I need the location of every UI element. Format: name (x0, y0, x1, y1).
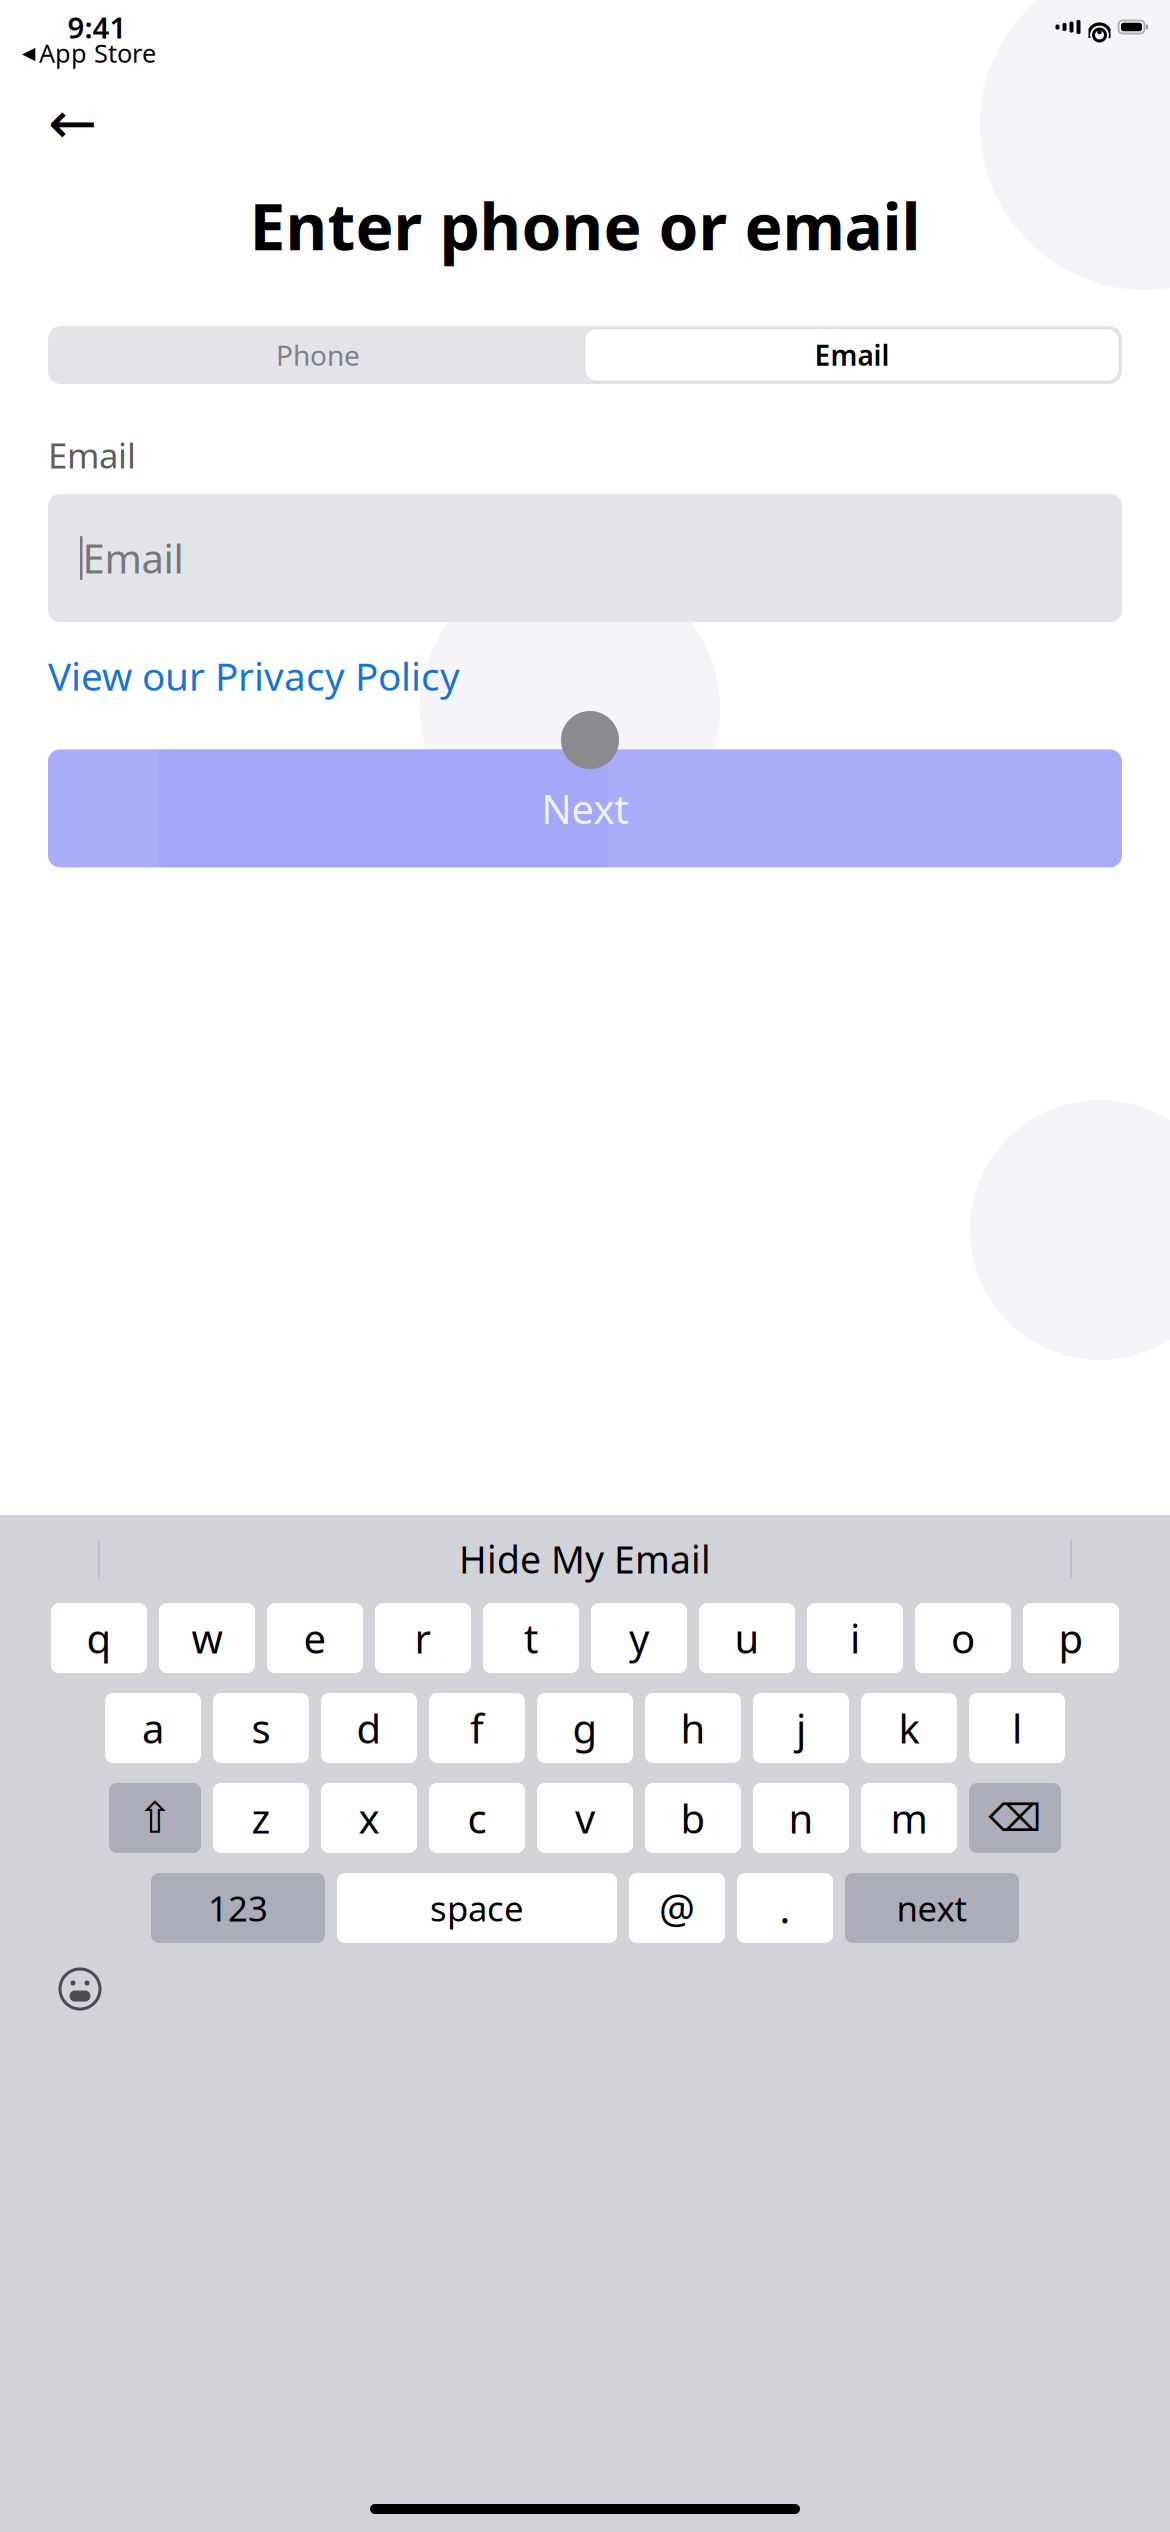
staticText: i (850, 1611, 860, 1664)
staticText: u (734, 1611, 759, 1664)
button[interactable]: q (51, 1603, 147, 1673)
staticText: . (779, 1881, 790, 1934)
staticText: s (251, 1701, 270, 1754)
staticText: ⇧ (137, 1794, 173, 1842)
staticText: n (788, 1791, 813, 1844)
button[interactable]: a (105, 1693, 201, 1763)
button[interactable]: k (861, 1693, 957, 1763)
button[interactable]: n (753, 1783, 849, 1853)
staticText: x (358, 1791, 379, 1844)
button[interactable]: g (537, 1693, 633, 1763)
staticText: 9:41 (67, 7, 126, 46)
button[interactable]: y (591, 1603, 687, 1673)
button[interactable]: x (321, 1783, 417, 1853)
button[interactable]: h (645, 1693, 741, 1763)
button[interactable]: z (213, 1783, 309, 1853)
staticText: o (951, 1611, 975, 1664)
button[interactable]: v (537, 1783, 633, 1853)
button[interactable]: Next (48, 749, 1122, 867)
button[interactable]: m (861, 1783, 957, 1853)
staticText: j (796, 1701, 806, 1754)
button[interactable]: s (213, 1693, 309, 1763)
button[interactable]: . (737, 1873, 833, 1943)
staticText: m (890, 1791, 927, 1844)
button[interactable]: Delete (969, 1783, 1061, 1853)
button[interactable]: b (645, 1783, 741, 1853)
staticText: Phone (276, 336, 360, 374)
staticText: p (1058, 1611, 1083, 1664)
staticText: e (303, 1611, 326, 1664)
staticText: ← (48, 90, 97, 156)
staticText: Email (814, 336, 889, 374)
staticText: ◀ (22, 43, 35, 63)
staticText: Next (541, 782, 628, 835)
button[interactable]: @ (629, 1873, 725, 1943)
button[interactable]: d (321, 1693, 417, 1763)
staticText: h (680, 1701, 705, 1754)
staticText: w (191, 1611, 222, 1664)
staticText: r (414, 1611, 431, 1664)
staticText: space (430, 1885, 524, 1931)
staticText: t (524, 1611, 538, 1664)
staticText: View our Privacy Policy (48, 650, 460, 701)
button[interactable]: next (845, 1873, 1019, 1943)
staticText: y (629, 1611, 649, 1664)
button[interactable]: View our Privacy Policy (48, 650, 460, 701)
staticText: k (898, 1701, 919, 1754)
button[interactable]: i (807, 1603, 903, 1673)
button[interactable]: r (375, 1603, 471, 1673)
staticText: l (1012, 1701, 1022, 1754)
staticText: a (142, 1701, 164, 1754)
button[interactable]: o (915, 1603, 1011, 1673)
button[interactable]: j (753, 1693, 849, 1763)
staticText: ⌫ (988, 1797, 1041, 1839)
staticText: Email (48, 432, 136, 478)
staticText: 123 (208, 1885, 268, 1931)
staticText: b (680, 1791, 705, 1844)
button[interactable]: Phone (51, 329, 585, 381)
staticText: Hide My Email (459, 1534, 711, 1584)
button[interactable]: Shift (109, 1783, 201, 1853)
button[interactable]: 123 (151, 1873, 325, 1943)
button[interactable]: u (699, 1603, 795, 1673)
staticText: next (896, 1885, 967, 1931)
staticText: z (251, 1791, 270, 1844)
button[interactable]: ◀ (22, 36, 156, 70)
staticText: q (86, 1611, 111, 1664)
button[interactable]: l (969, 1693, 1065, 1763)
button[interactable]: t (483, 1603, 579, 1673)
staticText: v (575, 1791, 595, 1844)
button[interactable]: e (267, 1603, 363, 1673)
staticText: c (467, 1791, 486, 1844)
staticText: App Store (39, 36, 156, 70)
staticText: f (470, 1701, 484, 1754)
staticText: Enter phone or email (249, 183, 920, 268)
button[interactable]: Hide My Email (8, 1515, 1162, 1603)
button[interactable]: Back (48, 91, 112, 155)
staticText: Email (82, 531, 183, 585)
button[interactable]: Email (48, 494, 1122, 622)
button[interactable]: f (429, 1693, 525, 1763)
button[interactable]: space (337, 1873, 617, 1943)
staticText: g (572, 1701, 597, 1754)
staticText: @ (659, 1881, 695, 1934)
button[interactable]: w (159, 1603, 255, 1673)
button[interactable]: c (429, 1783, 525, 1853)
button[interactable]: Emoji keyboard (56, 1965, 104, 2013)
button[interactable]: Email (585, 329, 1119, 381)
staticText: d (356, 1701, 381, 1754)
button[interactable]: p (1023, 1603, 1119, 1673)
